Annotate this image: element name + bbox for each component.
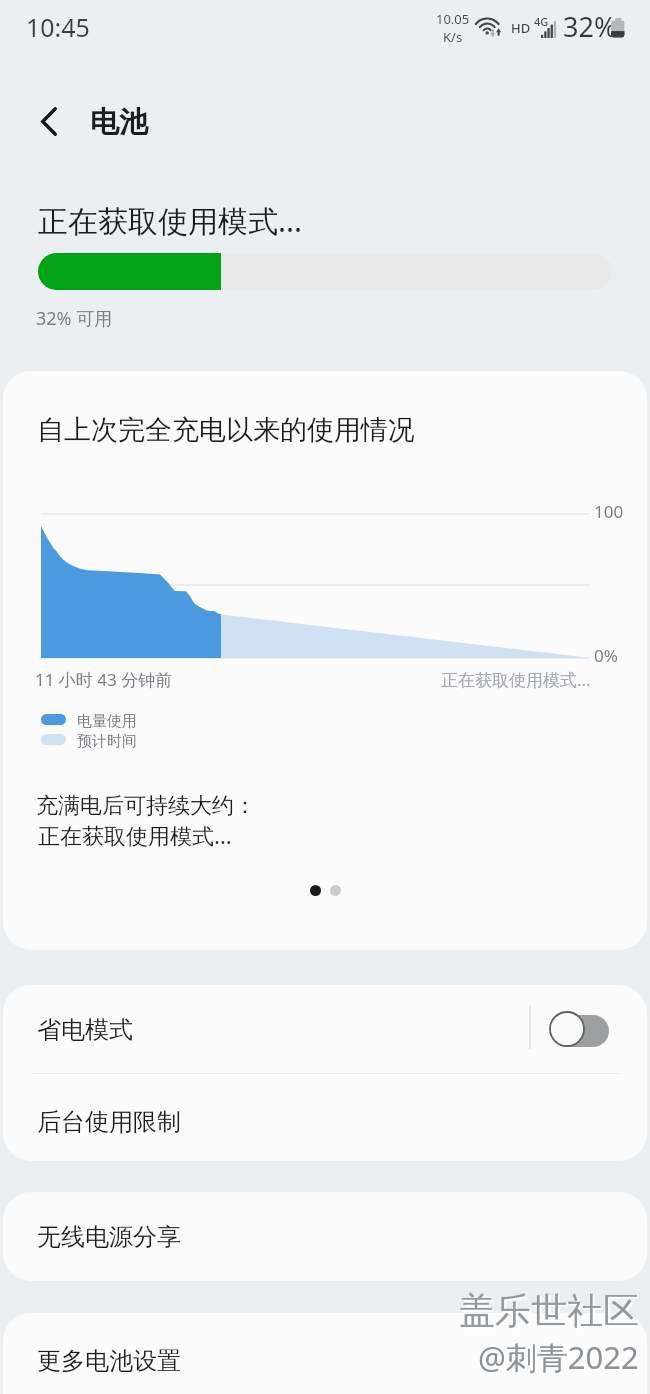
staticText: 盖乐世社区 (459, 1288, 639, 1333)
button[interactable]: Power saving mode toggle (549, 1011, 609, 1047)
staticText: @刺青2022 (480, 1338, 641, 1380)
staticText: 更多电池设置 (37, 1346, 181, 1376)
staticText: 4G (534, 14, 549, 29)
staticText: 省电模式 (37, 1015, 133, 1045)
staticText: 100 (594, 500, 624, 523)
staticText: K/s (443, 28, 463, 46)
staticText: 充满电后可持续大约： (36, 792, 256, 820)
staticText: 电量使用 (77, 712, 137, 731)
staticText: 盖乐世社区 (461, 1290, 641, 1335)
button[interactable]: 无线电源分享 (3, 1192, 647, 1281)
button[interactable]: 省电模式 (3, 985, 647, 1075)
staticText: 正在获取使用模式... (441, 668, 591, 691)
staticText: 自上次完全充电以来的使用情况 (37, 413, 415, 447)
button[interactable]: Back (20, 91, 77, 151)
staticText: 后台使用限制 (37, 1107, 181, 1137)
staticText: 无线电源分享 (37, 1222, 181, 1252)
staticText: @刺青2022 (478, 1336, 639, 1378)
staticText: 11 小时 43 分钟前 (35, 668, 173, 691)
button[interactable]: 后台使用限制 (3, 1078, 647, 1161)
staticText: 0% (594, 644, 618, 667)
staticText: 电池 (90, 104, 148, 141)
staticText: 正在获取使用模式... (38, 820, 232, 850)
staticText: HD (511, 19, 531, 37)
staticText: 10.05 (436, 10, 470, 28)
staticText: 正在获取使用模式... (38, 200, 303, 241)
staticText: 32% 可用 (36, 306, 113, 331)
staticText: 32% (563, 8, 617, 45)
button[interactable]: 更多电池设置 (3, 1313, 647, 1394)
staticText: 预计时间 (77, 732, 137, 751)
staticText: 10:45 (26, 10, 90, 44)
